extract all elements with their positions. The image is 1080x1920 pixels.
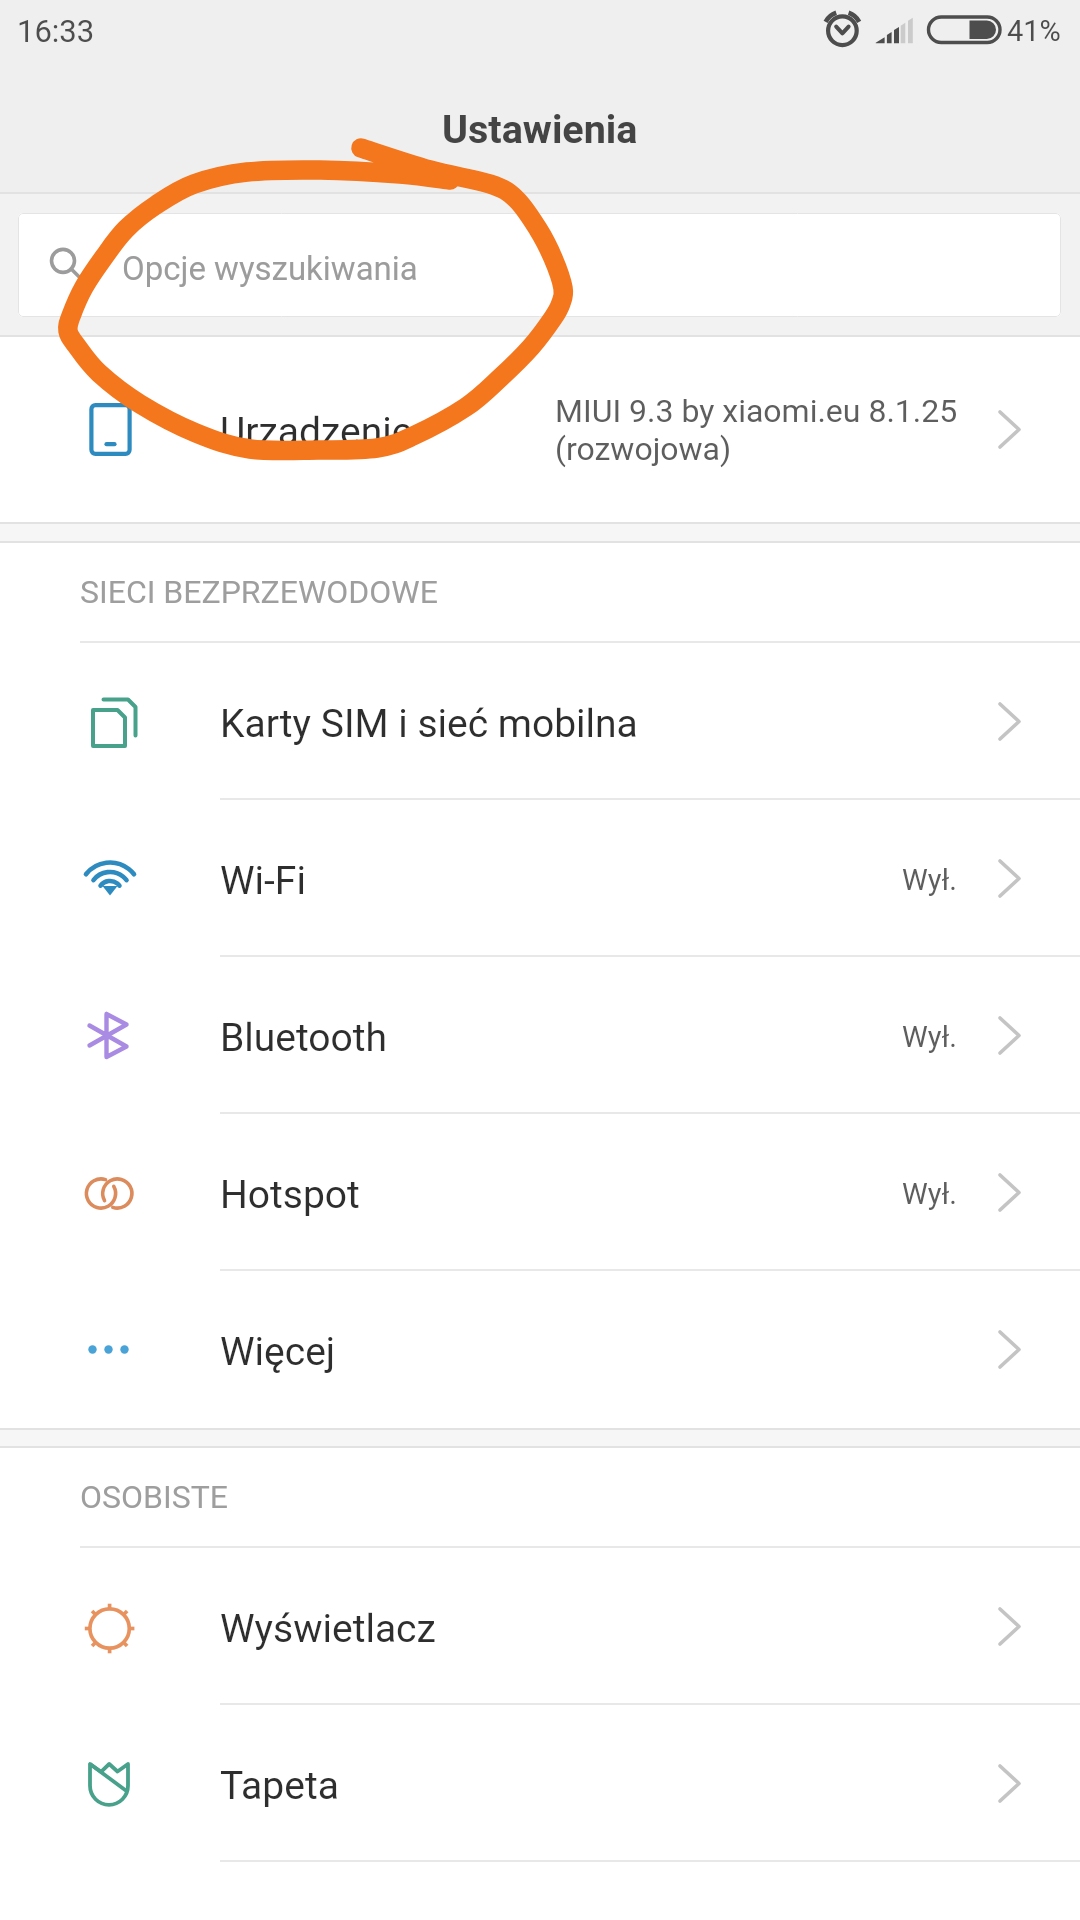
staticText: Wyświetlacz [220,1606,436,1652]
button[interactable]: Bluetooth [0,957,1080,1114]
button[interactable]: Hotspot [0,1114,1080,1271]
button[interactable]: Opcje wyszukiwania [18,213,1061,317]
staticText: OSOBISTE [80,1478,228,1516]
staticText: Bluetooth [220,1015,388,1061]
button[interactable]: Tapeta [0,1705,1080,1862]
staticText: (rozwojowa) [555,430,732,468]
staticText: Wył. [902,863,957,897]
staticText: Ustawienia [442,106,638,152]
staticText: Urządzenie [220,409,413,455]
staticText: Więcej [220,1329,336,1375]
staticText: Wi-Fi [220,858,306,904]
staticText: 16:33 [17,13,95,49]
staticText: Karty SIM i sieć mobilna [220,701,638,747]
staticText: Opcje wyszukiwania [122,249,418,288]
button[interactable]: Więcej [0,1271,1080,1428]
staticText: MIUI 9.3 by xiaomi.eu 8.1.25 [555,392,958,430]
button[interactable]: Wi-Fi [0,800,1080,957]
button[interactable]: Wyświetlacz [0,1548,1080,1705]
staticText: Wył. [902,1020,957,1054]
staticText: Tapeta [220,1763,339,1809]
button[interactable]: Urządzenie [0,337,1080,522]
staticText: Wył. [902,1177,957,1211]
staticText: Hotspot [220,1172,360,1218]
staticText: 41% [1007,14,1061,48]
button[interactable]: Karty SIM i sieć mobilna [0,643,1080,800]
staticText: SIECI BEZPRZEWODOWE [80,573,438,611]
